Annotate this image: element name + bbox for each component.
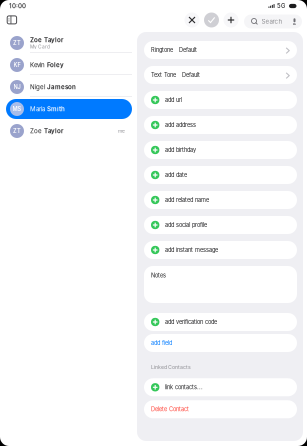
staticText: add birthday — [165, 147, 196, 153]
button[interactable]: Add — [222, 11, 240, 29]
button[interactable]: Delete Contact — [144, 400, 297, 418]
staticText: add address — [165, 122, 196, 128]
staticText: Taylor — [44, 127, 63, 135]
button[interactable]: link contacts... — [144, 378, 297, 396]
staticText: ZT — [13, 128, 21, 134]
staticText: add related name — [165, 197, 209, 203]
staticText: add social profile — [165, 222, 207, 228]
staticText: Smith — [47, 105, 65, 113]
staticText: Maria — [30, 105, 47, 113]
staticText: me — [118, 128, 125, 134]
staticText: KF — [13, 62, 20, 68]
staticText: Linked Contacts — [151, 364, 191, 370]
staticText: Zoe — [30, 127, 44, 135]
button[interactable]: KF — [6, 54, 132, 76]
staticText: My Card — [30, 44, 50, 50]
button[interactable]: add related name — [144, 191, 297, 209]
staticText: Delete Contact — [151, 406, 189, 413]
button[interactable]: Toggle Sidebar — [4, 13, 20, 27]
button[interactable]: add field — [144, 334, 297, 352]
button[interactable]: add instant message — [144, 241, 297, 259]
button[interactable]: Text Tone — [144, 66, 297, 84]
staticText: MS — [12, 106, 21, 112]
staticText: Kevin — [30, 61, 47, 69]
staticText: add url — [165, 97, 182, 103]
staticText: ZT — [13, 40, 21, 46]
staticText: Default — [182, 72, 200, 78]
staticText: Ringtone — [151, 47, 173, 53]
button[interactable]: ZT — [6, 120, 132, 142]
staticText: add field — [151, 340, 172, 346]
button[interactable]: ZT — [6, 32, 132, 54]
button[interactable]: Ringtone — [144, 41, 297, 59]
button[interactable]: MS — [6, 98, 132, 120]
staticText: add instant message — [165, 247, 218, 253]
staticText: Text Tone — [151, 72, 176, 78]
staticText: Jameson — [47, 83, 76, 91]
button[interactable]: Search — [244, 14, 302, 28]
staticText: Taylor — [44, 36, 63, 44]
staticText: Zoe — [30, 36, 44, 44]
staticText: Nigel — [30, 83, 47, 91]
staticText: NJ — [13, 84, 20, 90]
button[interactable]: Notes — [144, 266, 297, 303]
button[interactable]: add address — [144, 116, 297, 134]
button[interactable]: add url — [144, 91, 297, 109]
button[interactable]: Done — [202, 11, 220, 29]
button[interactable]: add verification code — [144, 313, 297, 331]
staticText: 10:00 — [9, 2, 26, 10]
button[interactable]: add birthday — [144, 141, 297, 159]
staticText: add verification code — [165, 319, 217, 325]
button[interactable]: Cancel — [183, 11, 201, 29]
staticText: Default — [179, 47, 197, 53]
button[interactable]: add date — [144, 166, 297, 184]
button[interactable]: NJ — [6, 76, 132, 98]
staticText: Foley — [47, 61, 64, 69]
staticText: 5G — [277, 2, 285, 9]
staticText: Notes — [151, 272, 166, 279]
staticText: Search — [261, 18, 282, 25]
staticText: add date — [165, 172, 187, 178]
staticText: link contacts... — [165, 384, 203, 391]
button[interactable]: add social profile — [144, 216, 297, 234]
